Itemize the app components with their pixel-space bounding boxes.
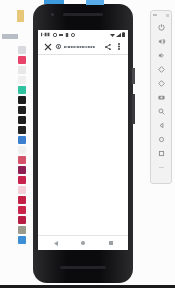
button[interactable]: Home	[73, 236, 93, 250]
button[interactable]: Zoom	[151, 104, 171, 118]
button[interactable]: Volume down	[151, 48, 171, 62]
button[interactable]: More options	[113, 41, 124, 52]
button[interactable]: More	[151, 160, 171, 174]
button[interactable]: Share	[102, 41, 113, 52]
button[interactable]: Recents	[101, 236, 121, 250]
button[interactable]	[56, 39, 102, 54]
button[interactable]: Power	[151, 20, 171, 34]
button[interactable]: Back	[151, 118, 171, 132]
button[interactable]: Home	[151, 132, 171, 146]
button[interactable]: Rotate right	[151, 76, 171, 90]
button[interactable]: Rotate left	[151, 62, 171, 76]
button[interactable]: Close	[42, 41, 53, 52]
button[interactable]: Volume up	[151, 34, 171, 48]
button[interactable]: Take screenshot	[151, 90, 171, 104]
button[interactable]: Overview	[151, 146, 171, 160]
button[interactable]: Back	[46, 236, 66, 250]
